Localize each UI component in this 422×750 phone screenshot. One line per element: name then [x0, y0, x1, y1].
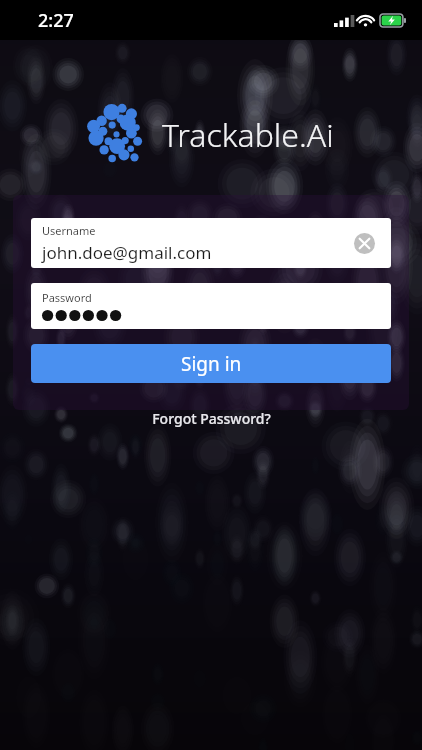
button[interactable]: Forgot Password? [142, 405, 281, 432]
staticText: Username [42, 223, 96, 238]
staticText: Password [42, 290, 92, 305]
button[interactable]: Sign in [31, 344, 391, 383]
staticText: Forgot Password? [152, 409, 271, 428]
staticText: Sign in [181, 351, 242, 377]
staticText: 2:27 [38, 8, 74, 33]
staticText: john.doe@gmail.com [42, 241, 212, 264]
button[interactable]: Password [31, 283, 391, 329]
staticText: Trackable.Ai [162, 113, 334, 157]
button[interactable]: Clear username [351, 230, 377, 256]
button[interactable]: Username [31, 218, 391, 268]
